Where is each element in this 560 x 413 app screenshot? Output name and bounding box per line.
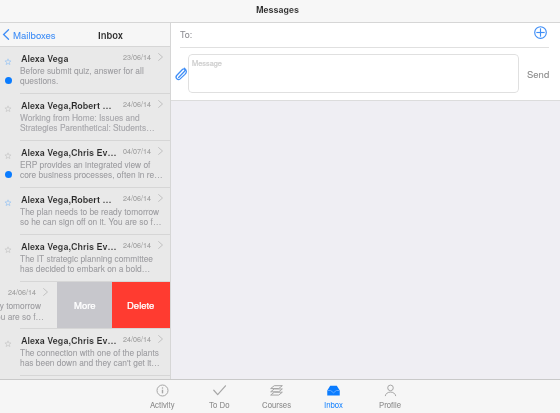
staticText: ERP provides an integrated view of core … — [20, 158, 163, 181]
button[interactable]: Alexa Vega,Robert … — [0, 188, 170, 234]
button[interactable]: Delete — [112, 282, 170, 328]
staticText: 24/06/14 — [8, 287, 36, 297]
staticText: Inbox — [324, 399, 343, 410]
button[interactable]: Activity — [134, 380, 191, 413]
staticText: 24/06/14 — [123, 99, 151, 109]
staticText: 23/06/14 — [123, 52, 151, 62]
button[interactable]: Alexa Vega,Chris Ev… — [0, 329, 170, 375]
staticText: Courses — [262, 399, 292, 410]
button[interactable]: Alexa Vega,Robert … — [0, 94, 170, 140]
staticText: Alexa Vega,Chris Ev… — [21, 146, 119, 159]
staticText: Send — [527, 67, 550, 81]
staticText: Alexa Vega — [21, 52, 119, 65]
button[interactable]: More — [57, 282, 112, 328]
staticText: More — [74, 298, 96, 312]
staticText: 24/06/14 — [123, 193, 151, 203]
staticText: Mailboxes — [13, 28, 56, 42]
staticText: Alexa Vega,Chris Ev… — [21, 334, 119, 347]
button[interactable]: To Do — [191, 380, 248, 413]
staticText: Profile — [379, 399, 402, 410]
button[interactable]: Alexa Vega,Chris Ev… — [0, 235, 170, 281]
staticText: Before submit quiz, answer for all quest… — [20, 64, 163, 87]
staticText: Messages — [256, 3, 300, 16]
staticText: Alexa Vega,Robert … — [21, 193, 119, 206]
button[interactable]: Courses — [248, 380, 305, 413]
staticText: 24/06/14 — [123, 240, 151, 250]
staticText: The plan needs to be ready tomorrow so h… — [20, 205, 163, 228]
staticText: ou are so f… — [0, 310, 44, 322]
staticText: Message — [192, 58, 222, 69]
button[interactable]: Attach file — [174, 66, 188, 80]
staticText: To: — [180, 28, 193, 41]
staticText: Delete — [127, 298, 155, 312]
button[interactable]: Alexa Vega,Chris Ev… — [0, 141, 170, 187]
staticText: Working from Home: Issues and Strategies… — [20, 111, 163, 134]
staticText: The connection with one of the plants ha… — [20, 346, 163, 369]
staticText: To Do — [209, 399, 230, 410]
staticText: Alexa Vega,Chris Ev… — [21, 240, 119, 253]
staticText: Inbox — [98, 28, 124, 42]
button[interactable]: Alexa Vega — [0, 47, 170, 93]
staticText: Activity — [150, 399, 175, 410]
staticText: Alexa Vega,Robert … — [21, 99, 119, 112]
button[interactable]: Message — [188, 54, 519, 93]
staticText: dy tomorrow — [0, 299, 41, 311]
button[interactable]: Mailboxes — [3, 28, 56, 42]
staticText: 24/06/14 — [123, 334, 151, 344]
staticText: 04/07/14 — [123, 146, 151, 156]
button[interactable]: Inbox — [305, 380, 362, 413]
staticText: The IT strategic planning committee has … — [20, 252, 163, 275]
button[interactable]: Send — [519, 54, 557, 93]
button[interactable]: Profile — [362, 380, 419, 413]
button[interactable]: Add recipient — [534, 26, 547, 39]
